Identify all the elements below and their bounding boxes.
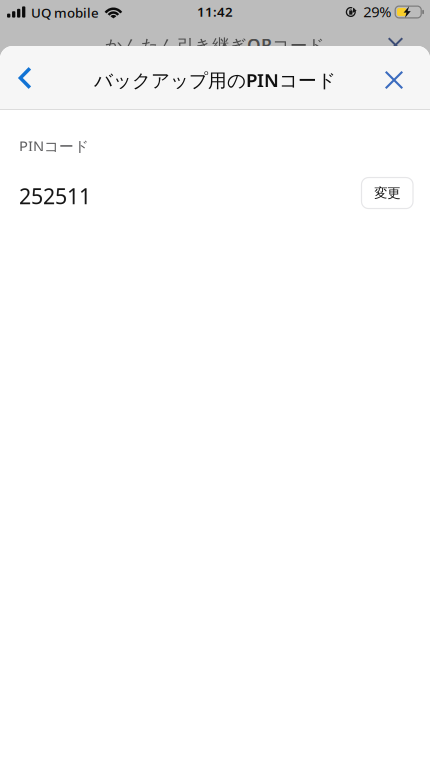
staticText: PINコード	[19, 136, 89, 156]
staticText: 変更	[374, 185, 400, 201]
button[interactable]: 変更	[361, 178, 413, 209]
staticText: 29%	[363, 2, 391, 21]
button[interactable]: Back	[1, 53, 47, 103]
button[interactable]: Close	[371, 53, 417, 103]
staticText: 11:42	[197, 3, 233, 20]
staticText: UQ mobile	[31, 4, 99, 21]
staticText: かんたん引き継ぎQRコード	[105, 33, 325, 56]
staticText: バックアップ用のPINコード	[94, 68, 336, 92]
staticText: 252511	[19, 182, 91, 210]
